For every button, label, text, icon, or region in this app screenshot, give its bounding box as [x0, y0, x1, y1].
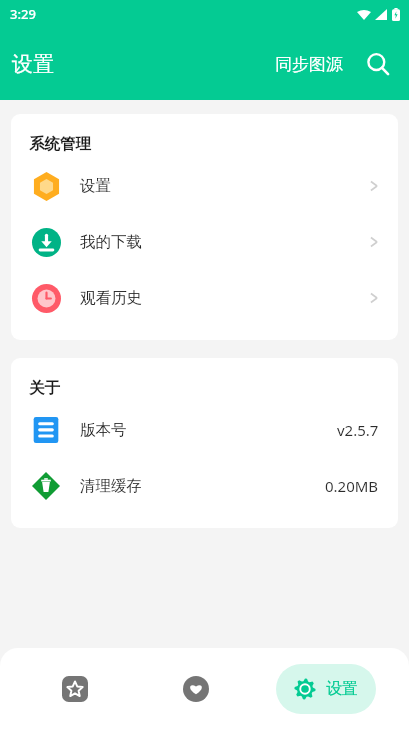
button[interactable]: 设置: [276, 664, 376, 714]
button[interactable]: Search: [359, 45, 397, 83]
staticText: 关于: [29, 378, 60, 398]
staticText: 同步图源: [275, 54, 343, 75]
staticText: 设置: [80, 176, 367, 196]
staticText: 我的下载: [80, 232, 367, 252]
button[interactable]: 我的下载: [11, 214, 398, 270]
staticText: 设置: [326, 679, 358, 699]
button[interactable]: 清理缓存: [11, 458, 398, 514]
staticText: 0.20MB: [325, 476, 379, 496]
staticText: v2.5.7: [337, 420, 379, 440]
staticText: 系统管理: [29, 134, 91, 154]
button[interactable]: 同步图源: [271, 48, 347, 81]
staticText: 设置: [12, 51, 54, 77]
button[interactable]: 设置: [11, 158, 398, 214]
button[interactable]: 版本号: [11, 402, 398, 458]
button[interactable]: Favorites: [14, 648, 135, 729]
button[interactable]: Likes: [135, 648, 256, 729]
button[interactable]: 观看历史: [11, 270, 398, 326]
staticText: 观看历史: [80, 288, 367, 308]
staticText: 版本号: [80, 420, 337, 440]
staticText: 3:29: [10, 5, 36, 23]
staticText: 清理缓存: [80, 476, 325, 496]
